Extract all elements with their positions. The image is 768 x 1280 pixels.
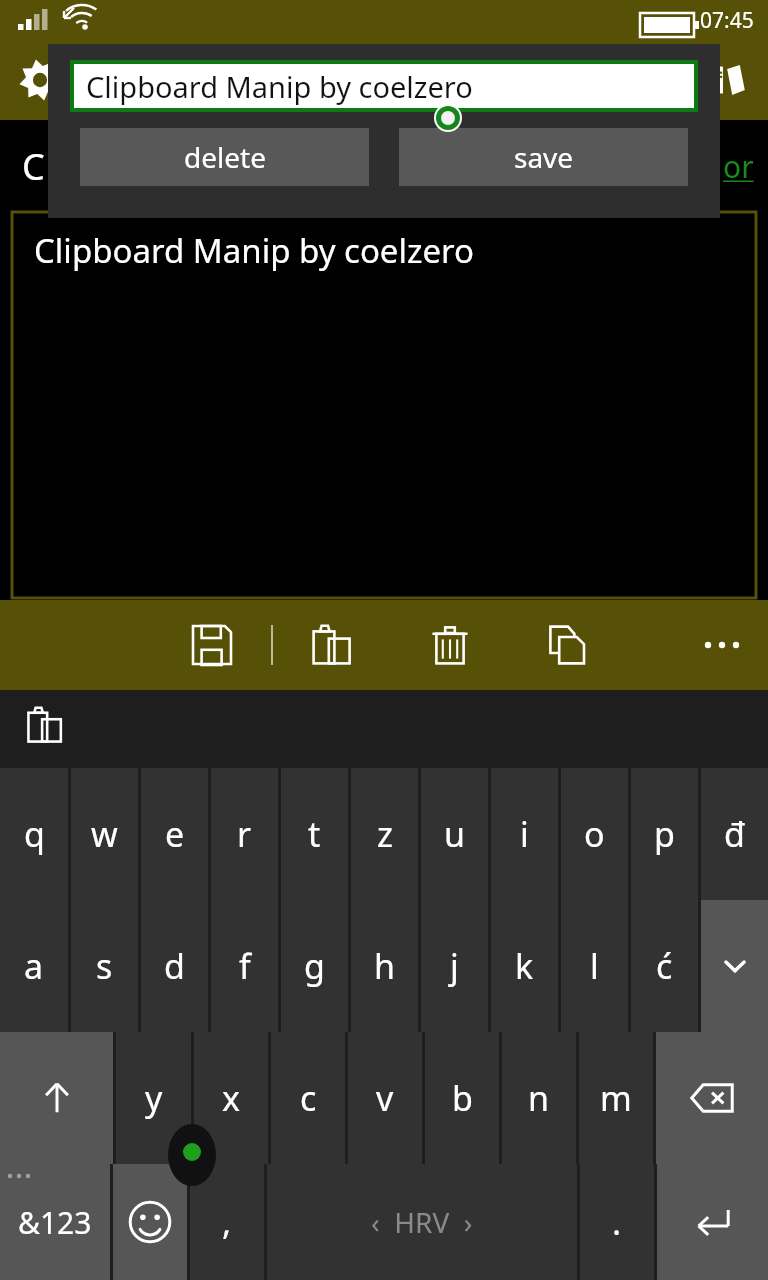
button[interactable]: Settings <box>0 40 80 120</box>
button[interactable]: k <box>491 900 558 1032</box>
staticText: l <box>590 943 599 989</box>
staticText: r <box>237 811 252 857</box>
button[interactable]: Library <box>688 40 768 120</box>
button[interactable]: x <box>194 1032 268 1164</box>
staticText: u <box>444 811 466 857</box>
staticText: d <box>164 943 185 989</box>
staticText: n <box>528 1075 550 1121</box>
staticText: y <box>145 1075 163 1121</box>
button[interactable]: Hide keyboard <box>701 900 768 1032</box>
button[interactable]: delete <box>80 128 369 186</box>
button[interactable]: Emoji <box>113 1164 187 1280</box>
staticText: a <box>24 943 44 989</box>
button[interactable]: Enter <box>657 1164 768 1280</box>
staticText: p <box>654 811 675 857</box>
staticText: k <box>515 943 534 989</box>
button[interactable]: s <box>71 900 138 1032</box>
staticText: h <box>374 943 396 989</box>
staticText: ‹ HRV › <box>371 1203 473 1241</box>
button[interactable]: ‹ HRV › <box>267 1164 577 1280</box>
button[interactable]: Paste <box>292 605 372 685</box>
staticText: delete <box>184 138 266 176</box>
button[interactable]: Delete <box>410 605 490 685</box>
button[interactable]: o <box>561 768 628 900</box>
staticText: q <box>24 811 45 857</box>
button[interactable]: r <box>211 768 278 900</box>
staticText: g <box>304 943 325 989</box>
button[interactable]: Clipboard Manip by coelzero <box>12 212 756 598</box>
staticText: w <box>91 811 118 857</box>
button[interactable]: y <box>116 1032 191 1164</box>
staticText: 07:45 <box>700 6 754 35</box>
staticText: Clipboard Manip by coelzero <box>86 67 473 106</box>
staticText: c <box>300 1075 317 1121</box>
button[interactable]: p <box>631 768 698 900</box>
staticText: đ <box>724 811 745 857</box>
button[interactable]: &123 <box>0 1164 110 1280</box>
button[interactable]: z <box>351 768 418 900</box>
staticText: &123 <box>18 1202 92 1243</box>
button[interactable]: v <box>348 1032 422 1164</box>
staticText: Clipboard Manip by coelzero <box>34 228 475 273</box>
button[interactable]: u <box>421 768 488 900</box>
staticText: x <box>222 1075 240 1121</box>
button[interactable]: , <box>190 1164 264 1280</box>
staticText: m <box>600 1075 632 1121</box>
staticText: e <box>165 811 185 857</box>
staticText: j <box>450 943 459 989</box>
button[interactable]: l <box>561 900 628 1032</box>
button[interactable]: Copy <box>528 605 608 685</box>
button[interactable]: i <box>491 768 558 900</box>
staticText: v <box>376 1075 394 1121</box>
button[interactable]: Shift <box>0 1032 113 1164</box>
button[interactable]: . <box>580 1164 654 1280</box>
button[interactable]: Clipboard Manip by coelzero <box>70 60 698 112</box>
staticText: . <box>612 1199 622 1245</box>
staticText: ć <box>656 943 673 989</box>
staticText: f <box>239 943 251 989</box>
button[interactable]: đ <box>701 768 768 900</box>
staticText: s <box>96 943 113 989</box>
staticText: t <box>308 811 321 857</box>
staticText: , <box>222 1199 232 1245</box>
button[interactable]: n <box>502 1032 576 1164</box>
button[interactable]: Clipboard suggestion <box>10 690 80 760</box>
staticText: save <box>514 138 574 176</box>
button[interactable]: w <box>71 768 138 900</box>
button[interactable]: ć <box>631 900 698 1032</box>
button[interactable]: t <box>281 768 348 900</box>
staticText: b <box>452 1075 473 1121</box>
button[interactable]: Backspace <box>656 1032 768 1164</box>
button[interactable]: c <box>271 1032 345 1164</box>
button[interactable]: m <box>579 1032 653 1164</box>
button[interactable]: Save <box>172 605 252 685</box>
button[interactable]: More <box>682 605 762 685</box>
button[interactable]: j <box>421 900 488 1032</box>
button[interactable]: q <box>0 768 68 900</box>
staticText: z <box>377 811 393 857</box>
button[interactable]: h <box>351 900 418 1032</box>
button[interactable]: a <box>0 900 68 1032</box>
staticText: i <box>520 811 529 857</box>
button[interactable]: or <box>723 146 754 187</box>
button[interactable]: b <box>425 1032 499 1164</box>
button[interactable]: save <box>399 128 688 186</box>
button[interactable]: d <box>141 900 208 1032</box>
staticText: C <box>22 142 45 191</box>
button[interactable]: g <box>281 900 348 1032</box>
staticText: o <box>584 811 605 857</box>
button[interactable]: f <box>211 900 278 1032</box>
button[interactable]: e <box>141 768 208 900</box>
